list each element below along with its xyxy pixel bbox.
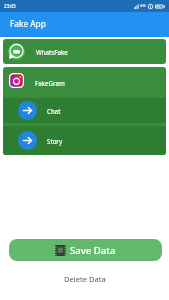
staticText: WhatsFake	[36, 48, 68, 56]
staticText: Chat	[47, 107, 61, 115]
staticText: FakeGram	[35, 79, 65, 87]
staticText: 23:03	[4, 3, 16, 9]
other: Open	[18, 101, 37, 120]
staticText: Fake App	[10, 18, 46, 29]
button[interactable]: FakeGram	[3, 67, 166, 98]
button[interactable]: Delete Data	[60, 272, 110, 286]
other: Open	[18, 131, 37, 150]
button[interactable]: Open	[3, 126, 166, 155]
staticText: Save Data	[70, 244, 116, 257]
button[interactable]: WhatsFake	[3, 39, 166, 64]
button[interactable]: Save Data	[9, 239, 162, 261]
staticText: Story	[47, 137, 63, 145]
button[interactable]: Open	[3, 98, 166, 123]
staticText: 4G	[140, 3, 146, 9]
